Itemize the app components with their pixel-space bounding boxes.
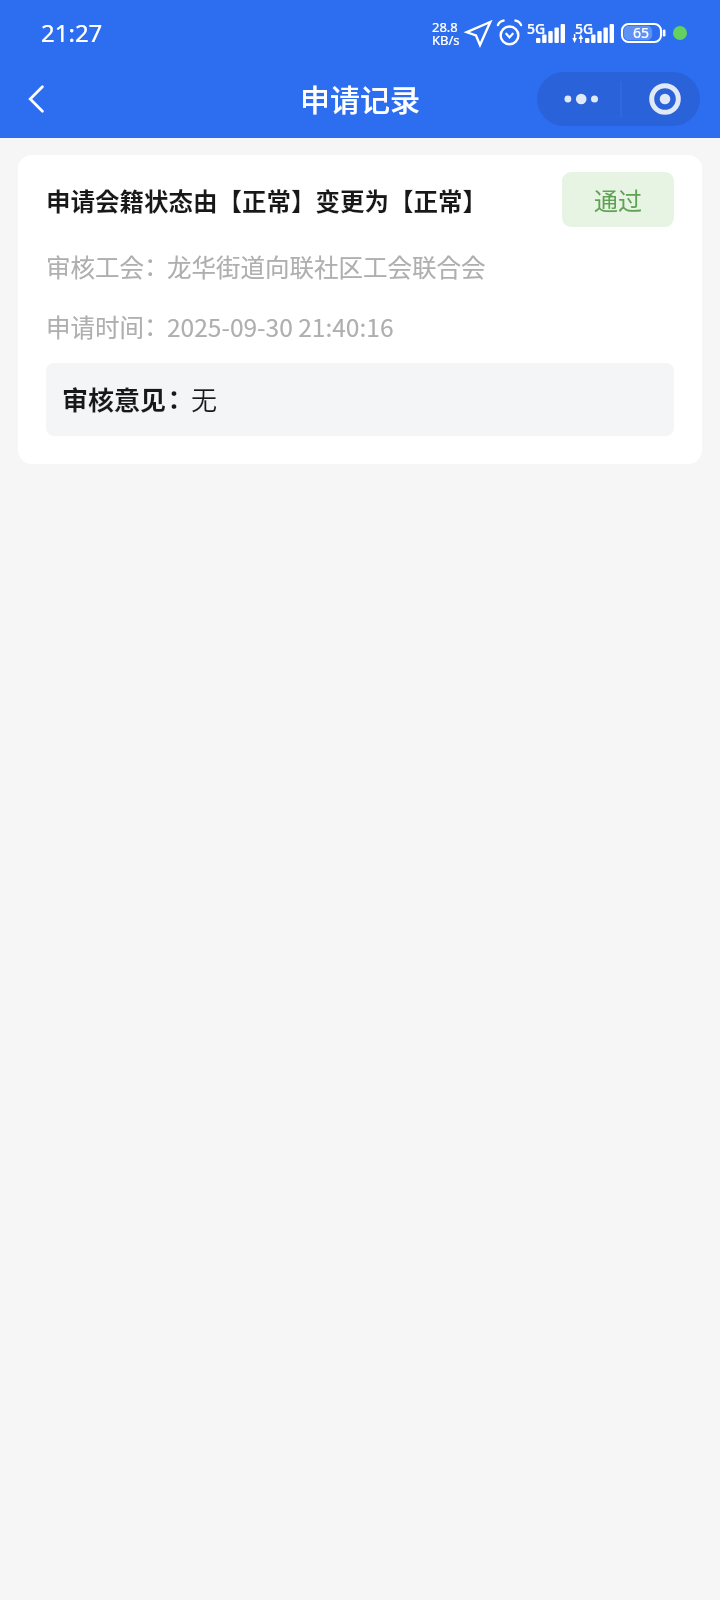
staticText: 5G <box>575 19 594 38</box>
staticText: 通过 <box>594 182 642 217</box>
staticText: 申请会籍状态由【正常】变更为【正常】 <box>46 183 554 218</box>
staticText: 65 <box>633 23 650 42</box>
staticText: 申请记录 <box>300 76 420 119</box>
button[interactable]: More <box>537 72 620 126</box>
staticText: KB/s <box>432 31 460 49</box>
staticText: 审核工会 <box>46 249 144 284</box>
button[interactable]: Back <box>6 68 68 130</box>
staticText: 21:27 <box>41 16 103 49</box>
button[interactable]: Close mini program <box>622 72 700 126</box>
button[interactable]: 通过 <box>562 172 674 227</box>
staticText: 2025-09-30 21:40:16 <box>167 309 394 344</box>
staticText: 审核意见 <box>62 380 167 418</box>
staticText: 龙华街道向联社区工会联合会 <box>167 249 486 284</box>
staticText: ： <box>138 249 161 284</box>
staticText: ： <box>138 309 161 344</box>
staticText: 无 <box>191 380 218 418</box>
staticText: 28.8 <box>432 18 458 36</box>
staticText: ： <box>161 380 185 418</box>
staticText: 5G <box>527 19 546 38</box>
staticText: 申请时间 <box>46 309 144 344</box>
